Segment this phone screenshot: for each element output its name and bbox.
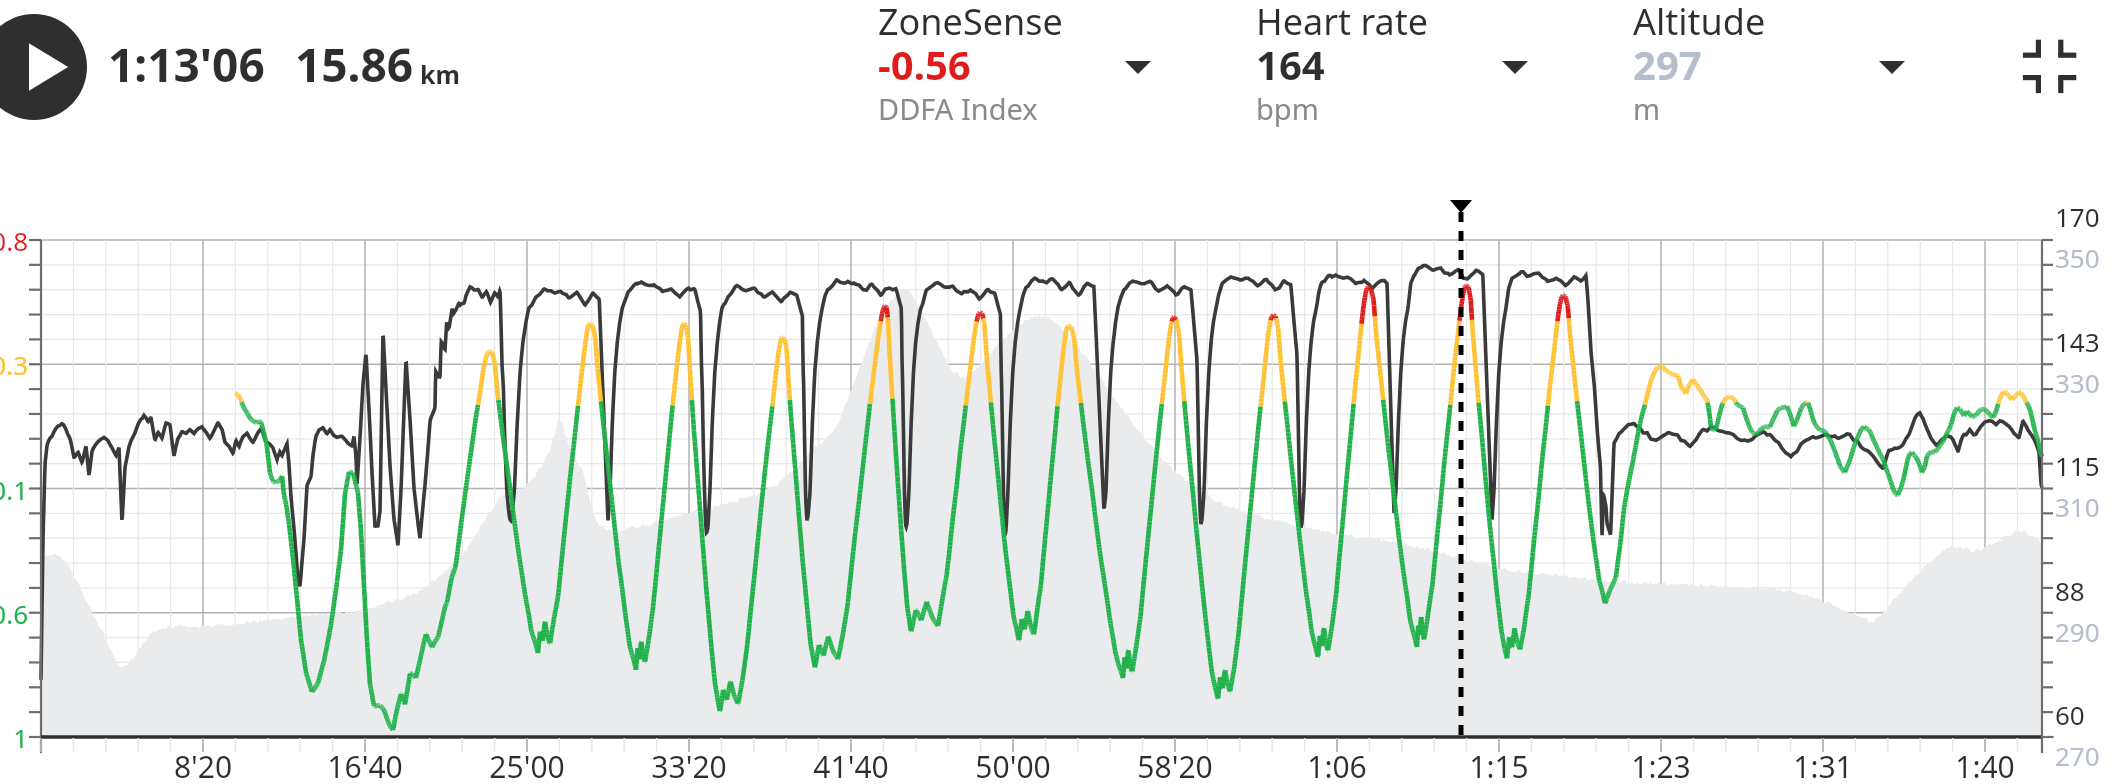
staticText: 0.1 [0, 472, 28, 507]
staticText: 41'40 [771, 746, 931, 784]
button[interactable]: Altitude [1633, 0, 1766, 142]
staticText: 115 [2055, 448, 2100, 483]
staticText: -0.6 [0, 596, 28, 631]
staticText: 25'00 [447, 746, 607, 784]
staticText: 164 [1256, 37, 1325, 91]
staticText: 16'40 [285, 746, 445, 784]
staticText: m [1633, 89, 1661, 128]
staticText: 1 [0, 720, 28, 755]
staticText: -0.8 [0, 223, 28, 258]
staticText: 170 [2055, 199, 2100, 234]
staticText: 58'20 [1095, 746, 1255, 784]
staticText: ZoneSense [878, 0, 1063, 46]
staticText: 1:13'06 [108, 33, 265, 96]
staticText: 297 [1633, 37, 1702, 91]
button[interactable]: Heart rate [1256, 0, 1429, 142]
staticText: bpm [1256, 89, 1319, 128]
staticText: 1:23 [1581, 746, 1741, 784]
button[interactable]: Play [0, 14, 87, 120]
staticText: Altitude [1633, 0, 1766, 46]
staticText: 1:31 [1743, 746, 1903, 784]
staticText: Heart rate [1256, 0, 1429, 46]
staticText: 1:15 [1419, 746, 1579, 784]
staticText: 88 [2055, 573, 2085, 608]
staticText: 8'20 [123, 746, 283, 784]
staticText: 1:40 [1905, 746, 2065, 784]
staticText: 15.86 [295, 33, 414, 96]
staticText: DDFA Index [878, 89, 1038, 128]
staticText: -0.3 [0, 347, 28, 382]
button[interactable]: Exit fullscreen [2021, 39, 2078, 94]
staticText: 50'00 [933, 746, 1093, 784]
staticText: 143 [2055, 324, 2100, 359]
staticText: 33'20 [609, 746, 769, 784]
staticText: 290 [2055, 614, 2100, 649]
staticText: 310 [2055, 489, 2100, 524]
staticText: 270 [2055, 738, 2100, 773]
staticText: km [420, 57, 460, 91]
staticText: 1:06 [1257, 746, 1417, 784]
staticText: 350 [2055, 240, 2100, 275]
staticText: 330 [2055, 365, 2100, 400]
staticText: -0.56 [878, 37, 971, 91]
button[interactable]: ZoneSense [878, 0, 1063, 142]
staticText: 60 [2055, 697, 2085, 732]
